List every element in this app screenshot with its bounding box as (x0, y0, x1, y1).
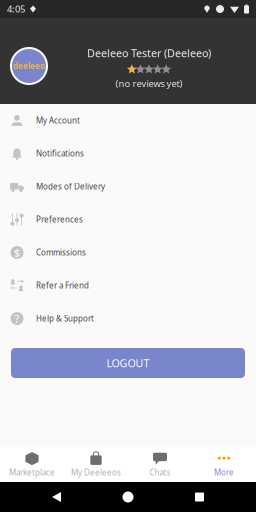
button[interactable]: More (192, 447, 256, 482)
button[interactable]: Notifications (0, 137, 256, 170)
button[interactable]: Modes of Delivery (0, 170, 256, 203)
button[interactable]: My Deeleeos (64, 447, 128, 482)
staticText: My Deeleeos (71, 467, 121, 478)
button[interactable]: Refer a Friend (0, 269, 256, 302)
button[interactable]: LOGOUT (11, 348, 245, 378)
staticText: (no reviews yet) (115, 77, 182, 90)
staticText: My Account (36, 115, 80, 126)
staticText: ? (14, 311, 19, 326)
staticText: Deeleeo Tester (Deeleeo) (87, 46, 211, 60)
button[interactable]: Preferences (0, 203, 256, 236)
staticText: Notifications (36, 148, 84, 159)
button[interactable]: Chats (128, 447, 192, 482)
staticText: Marketplace (9, 467, 55, 478)
button[interactable]: ? (0, 302, 256, 335)
staticText: Commissions (36, 247, 86, 258)
staticText: More (214, 467, 234, 478)
button[interactable]: Home (113, 482, 143, 512)
staticText: Modes of Delivery (36, 181, 105, 192)
staticText: LOGOUT (106, 356, 149, 370)
button[interactable]: Recents (184, 482, 214, 512)
staticText: Preferences (36, 214, 83, 225)
staticText: Help & Support (36, 313, 94, 324)
staticText: $ (14, 245, 20, 260)
button[interactable]: Back (41, 482, 71, 512)
staticText: deeleeo (13, 61, 45, 71)
staticText: Chats (149, 467, 170, 478)
staticText: Refer a Friend (36, 280, 89, 291)
button[interactable]: Marketplace (0, 447, 64, 482)
staticText: 4:05 (7, 3, 25, 15)
button[interactable]: My Account (0, 104, 256, 137)
button[interactable]: $ (0, 236, 256, 269)
